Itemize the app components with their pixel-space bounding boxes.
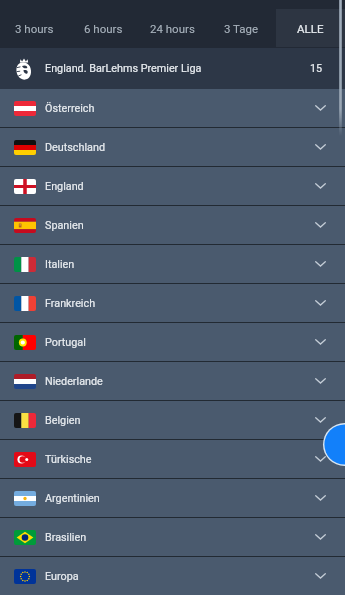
staticText: Argentinien bbox=[45, 492, 100, 505]
staticText: ALLE bbox=[297, 22, 324, 35]
button[interactable]: Expand bbox=[307, 290, 333, 316]
button[interactable]: Expand bbox=[307, 563, 333, 589]
button[interactable]: England. BarLehms Premier Liga bbox=[0, 48, 345, 89]
button[interactable]: Europa bbox=[0, 557, 345, 595]
button[interactable]: Österreich bbox=[0, 89, 345, 127]
button[interactable]: Expand bbox=[307, 212, 333, 238]
button[interactable]: Brasilien bbox=[0, 518, 345, 556]
staticText: Europa bbox=[45, 570, 79, 583]
button[interactable]: ALLE bbox=[276, 9, 345, 48]
button[interactable]: Add bbox=[323, 423, 345, 466]
button[interactable]: Expand bbox=[307, 329, 333, 355]
button[interactable]: Deutschland bbox=[0, 128, 345, 166]
button[interactable]: Portugal bbox=[0, 323, 345, 361]
button[interactable]: Frankreich bbox=[0, 284, 345, 322]
button[interactable]: Belgien bbox=[0, 401, 345, 439]
staticText: 3 hours bbox=[15, 22, 54, 35]
button[interactable]: Expand bbox=[307, 407, 333, 433]
staticText: Deutschland bbox=[45, 141, 106, 154]
button[interactable]: Expand bbox=[307, 134, 333, 160]
button[interactable]: Expand bbox=[307, 173, 333, 199]
button[interactable]: Expand bbox=[307, 251, 333, 277]
staticText: England. BarLehms Premier Liga bbox=[45, 62, 202, 75]
button[interactable]: 24 hours bbox=[138, 9, 207, 48]
staticText: 6 hours bbox=[84, 22, 123, 35]
staticText: Spanien bbox=[45, 219, 84, 232]
staticText: Frankreich bbox=[45, 297, 96, 310]
button[interactable]: Expand bbox=[307, 446, 333, 472]
staticText: Portugal bbox=[45, 336, 86, 349]
button[interactable]: England bbox=[0, 167, 345, 205]
button[interactable]: Expand bbox=[307, 95, 333, 121]
button[interactable]: Italien bbox=[0, 245, 345, 283]
staticText: Brasilien bbox=[45, 531, 87, 544]
button[interactable]: Türkische bbox=[0, 440, 345, 478]
staticText: Niederlande bbox=[45, 375, 103, 388]
button[interactable]: Expand bbox=[307, 368, 333, 394]
staticText: Türkische bbox=[45, 453, 92, 466]
button[interactable]: 6 hours bbox=[69, 9, 138, 48]
staticText: England bbox=[45, 180, 84, 193]
button[interactable]: Expand bbox=[307, 485, 333, 511]
button[interactable]: 3 hours bbox=[0, 9, 69, 48]
staticText: 3 Tage bbox=[224, 22, 259, 35]
button[interactable]: Spanien bbox=[0, 206, 345, 244]
button[interactable]: Niederlande bbox=[0, 362, 345, 400]
staticText: Italien bbox=[45, 258, 75, 271]
staticText: 24 hours bbox=[150, 22, 195, 35]
staticText: Österreich bbox=[45, 102, 95, 115]
button[interactable]: Argentinien bbox=[0, 479, 345, 517]
staticText: 15 bbox=[310, 62, 323, 75]
button[interactable]: Expand bbox=[307, 524, 333, 550]
staticText: Belgien bbox=[45, 414, 81, 427]
button[interactable]: 3 Tage bbox=[207, 9, 276, 48]
